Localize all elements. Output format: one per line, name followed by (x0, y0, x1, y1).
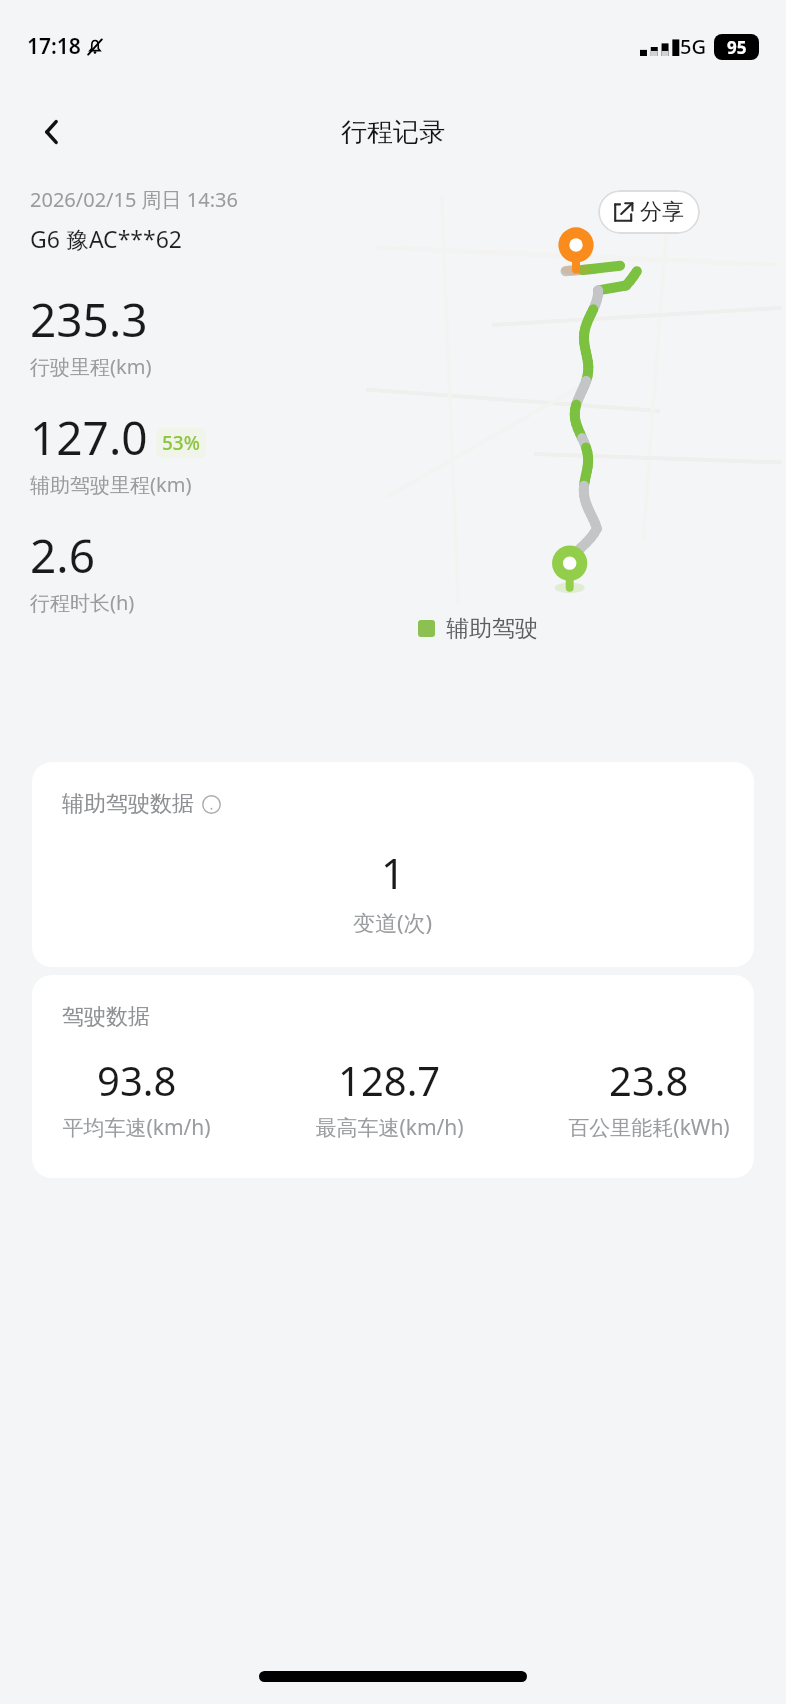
staticText: 驾驶数据 (62, 1003, 150, 1031)
button[interactable]: 驾驶数据 (32, 975, 754, 1178)
staticText: 95 (727, 36, 747, 59)
staticText: G6 豫AC***62 (30, 223, 182, 254)
staticText: 平均车速(km/h) (62, 1113, 211, 1142)
staticText: 5G (680, 33, 706, 60)
staticText: 辅助驾驶数据 (62, 790, 194, 818)
button[interactable]: 分享 (598, 190, 700, 234)
staticText: 127.0 (30, 406, 148, 469)
staticText: 变道(次) (353, 907, 433, 937)
staticText: 128.7 (338, 1053, 441, 1107)
button[interactable]: 辅助驾驶数据 (32, 762, 754, 967)
staticText: 235.3 (30, 288, 148, 351)
staticText: 53% (162, 430, 200, 456)
staticText: 行程记录 (341, 116, 445, 149)
staticText: 93.8 (97, 1053, 177, 1107)
staticText: 分享 (640, 198, 684, 226)
staticText: 百公里能耗(kWh) (568, 1113, 730, 1142)
staticText: 1 (381, 844, 406, 901)
staticText: 2026/02/15 周日 14:36 (30, 186, 238, 213)
staticText: 17:18 (27, 32, 81, 61)
staticText: 最高车速(km/h) (315, 1113, 464, 1142)
staticText: 行程时长(h) (30, 589, 135, 616)
staticText: 行驶里程(km) (30, 353, 152, 380)
staticText: 23.8 (609, 1053, 689, 1107)
staticText: 2.6 (30, 524, 95, 587)
button[interactable]: Back (28, 108, 76, 156)
staticText: 辅助驾驶 (446, 614, 538, 643)
staticText: 辅助驾驶里程(km) (30, 471, 192, 498)
